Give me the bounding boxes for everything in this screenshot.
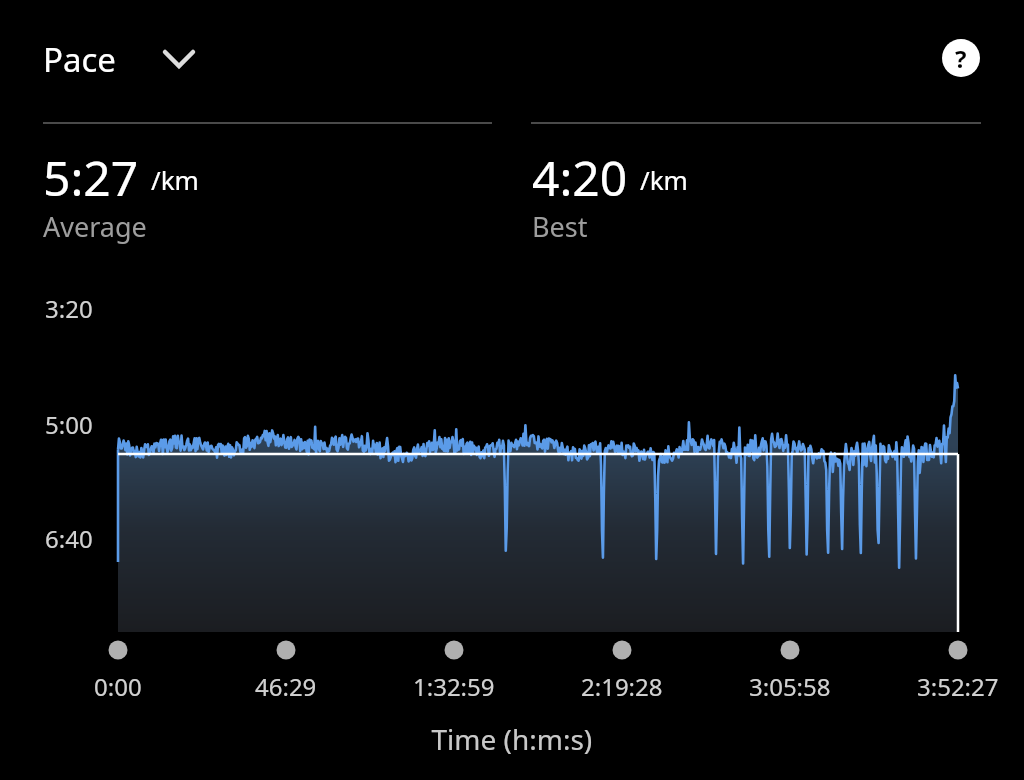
button[interactable]: Help: [936, 33, 986, 83]
button[interactable]: Pace metric selector: [40, 30, 205, 88]
